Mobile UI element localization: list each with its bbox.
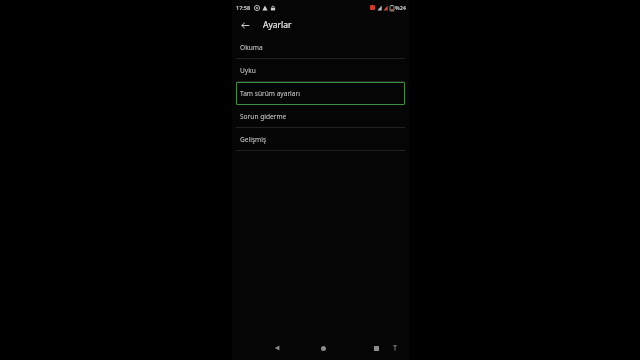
- button[interactable]: Son kullanılanlar: [369, 341, 383, 355]
- staticText: 17:58: [236, 4, 251, 11]
- staticText: Gelişmiş: [240, 135, 267, 144]
- button[interactable]: Geri: [270, 341, 284, 355]
- staticText: Sorun giderme: [240, 112, 287, 121]
- button[interactable]: Ana ekran: [316, 341, 330, 355]
- button[interactable]: Uyku: [236, 59, 405, 82]
- button[interactable]: Okuma: [236, 36, 405, 59]
- button[interactable]: Geri: [238, 18, 252, 32]
- button[interactable]: Sorun giderme: [236, 105, 405, 128]
- staticText: Okuma: [240, 43, 263, 52]
- button[interactable]: Tam sürüm ayarları: [236, 82, 405, 105]
- button[interactable]: Gelişmiş: [236, 128, 405, 151]
- staticText: Uyku: [240, 66, 256, 75]
- button[interactable]: Klavye: [389, 342, 401, 354]
- staticText: %24: [395, 4, 406, 11]
- staticText: Tam sürüm ayarları: [240, 89, 300, 98]
- staticText: Ayarlar: [263, 19, 292, 31]
